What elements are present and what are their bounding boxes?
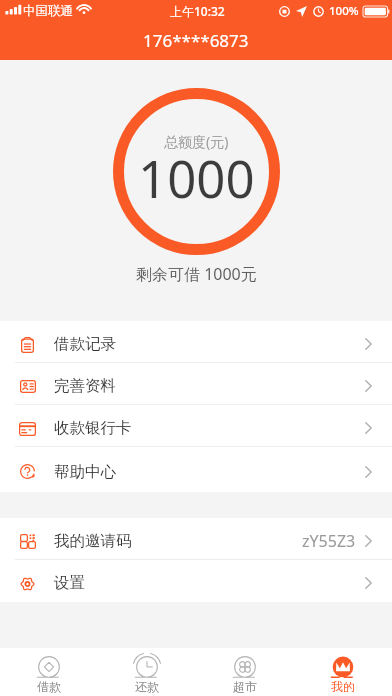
staticText: 上午10:32	[170, 3, 225, 19]
staticText: 还款	[135, 679, 159, 694]
staticText: 我的	[331, 679, 355, 694]
staticText: 中国联通	[23, 3, 73, 19]
staticText: 完善资料	[54, 376, 116, 396]
button[interactable]: 超市	[196, 648, 294, 696]
staticText: 借款	[37, 679, 61, 694]
staticText: 超市	[233, 679, 257, 694]
button[interactable]: 收款银行卡	[0, 405, 392, 447]
button[interactable]: 设置	[0, 560, 392, 602]
staticText: 设置	[54, 573, 85, 593]
staticText: zY55Z3	[302, 530, 356, 552]
button[interactable]: 我的邀请码	[0, 518, 392, 560]
staticText: 总额度(元)	[164, 132, 229, 151]
staticText: 1000	[138, 143, 255, 212]
button[interactable]: 帮助中心	[0, 447, 392, 492]
staticText: 100%	[329, 3, 359, 19]
staticText: 剩余可借 1000元	[136, 263, 257, 285]
staticText: 我的邀请码	[54, 531, 132, 551]
button[interactable]: 借款记录	[0, 321, 392, 363]
button[interactable]: 我的	[294, 648, 392, 696]
button[interactable]: 完善资料	[0, 363, 392, 405]
button[interactable]: 还款	[98, 648, 196, 696]
button[interactable]: 借款	[0, 648, 98, 696]
staticText: 帮助中心	[54, 462, 116, 482]
staticText: 收款银行卡	[54, 418, 132, 438]
staticText: 176****6873	[143, 29, 249, 52]
staticText: 借款记录	[54, 334, 116, 354]
